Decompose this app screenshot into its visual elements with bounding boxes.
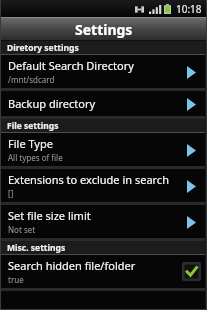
staticText: All types of file (8, 152, 63, 163)
staticText: Settings (75, 20, 133, 39)
staticText: Search hidden file/folder (8, 258, 136, 273)
staticText: true (8, 274, 24, 285)
other: Open File Type (181, 140, 201, 160)
button[interactable] (0, 291, 207, 310)
button[interactable]: Extensions to exclude in search (0, 169, 207, 202)
staticText: Misc. settings (7, 242, 66, 254)
staticText: /mnt/sdcard (8, 74, 55, 85)
staticText: Extensions to exclude in search (8, 172, 169, 187)
button[interactable]: Default Search Directory (0, 55, 207, 88)
staticText: File Type (8, 136, 53, 151)
button[interactable]: Search hidden file/folder (0, 255, 207, 288)
staticText: Not set (8, 224, 36, 235)
staticText: 10:18 (176, 2, 202, 16)
other: Open Extensions to exclude in search (181, 176, 201, 196)
other: Open Default Search Directory (181, 62, 201, 82)
staticText: Set file size limit (8, 208, 91, 223)
button[interactable]: Backup directory (0, 91, 207, 116)
button[interactable]: Set file size limit (0, 205, 207, 238)
other: Open Set file size limit (181, 212, 201, 232)
button[interactable]: File Type (0, 133, 207, 166)
other: Open Backup directory (181, 94, 201, 114)
staticText: Diretory settings (7, 42, 79, 54)
other: Toggle Search hidden file/folder (182, 262, 201, 281)
staticText: Default Search Directory (8, 58, 134, 73)
staticText: Backup directory (8, 96, 96, 111)
staticText: [] (8, 188, 14, 199)
staticText: File settings (7, 120, 59, 132)
